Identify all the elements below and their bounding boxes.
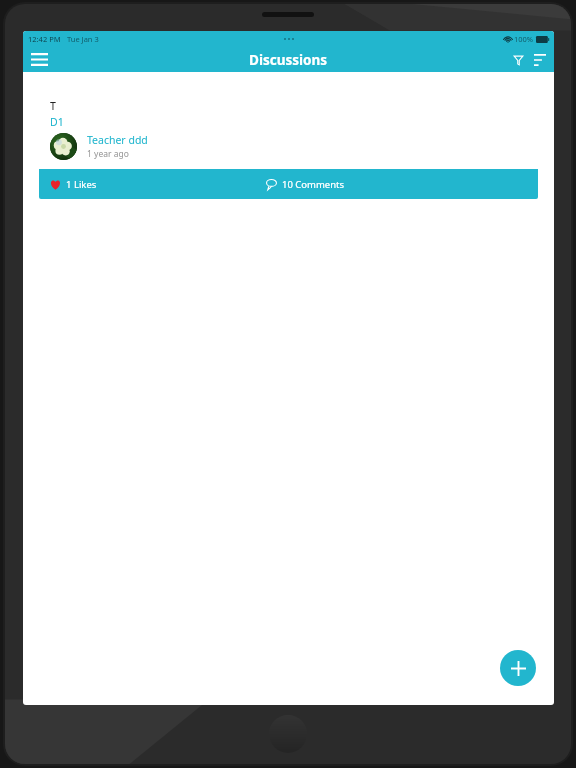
button[interactable]: T xyxy=(39,92,538,199)
button[interactable]: Create new discussion xyxy=(500,650,536,686)
staticText: 10 Comments xyxy=(282,178,345,191)
staticText: 12:42 PM xyxy=(28,34,61,44)
staticText: T xyxy=(50,99,56,113)
staticText: Teacher ddd xyxy=(87,133,148,147)
button[interactable]: Filter xyxy=(507,49,529,71)
button[interactable]: 1 Likes xyxy=(39,169,266,199)
staticText: 1 year ago xyxy=(87,148,129,160)
staticText: D1 xyxy=(50,115,64,129)
button[interactable]: Open navigation menu xyxy=(26,47,52,72)
staticText: 100% xyxy=(514,34,534,44)
staticText: Tue Jan 3 xyxy=(67,34,99,44)
staticText: Discussions xyxy=(249,51,328,69)
button[interactable]: 10 Comments xyxy=(266,169,538,199)
button[interactable]: Sort xyxy=(529,49,551,71)
staticText: 1 Likes xyxy=(66,178,97,191)
